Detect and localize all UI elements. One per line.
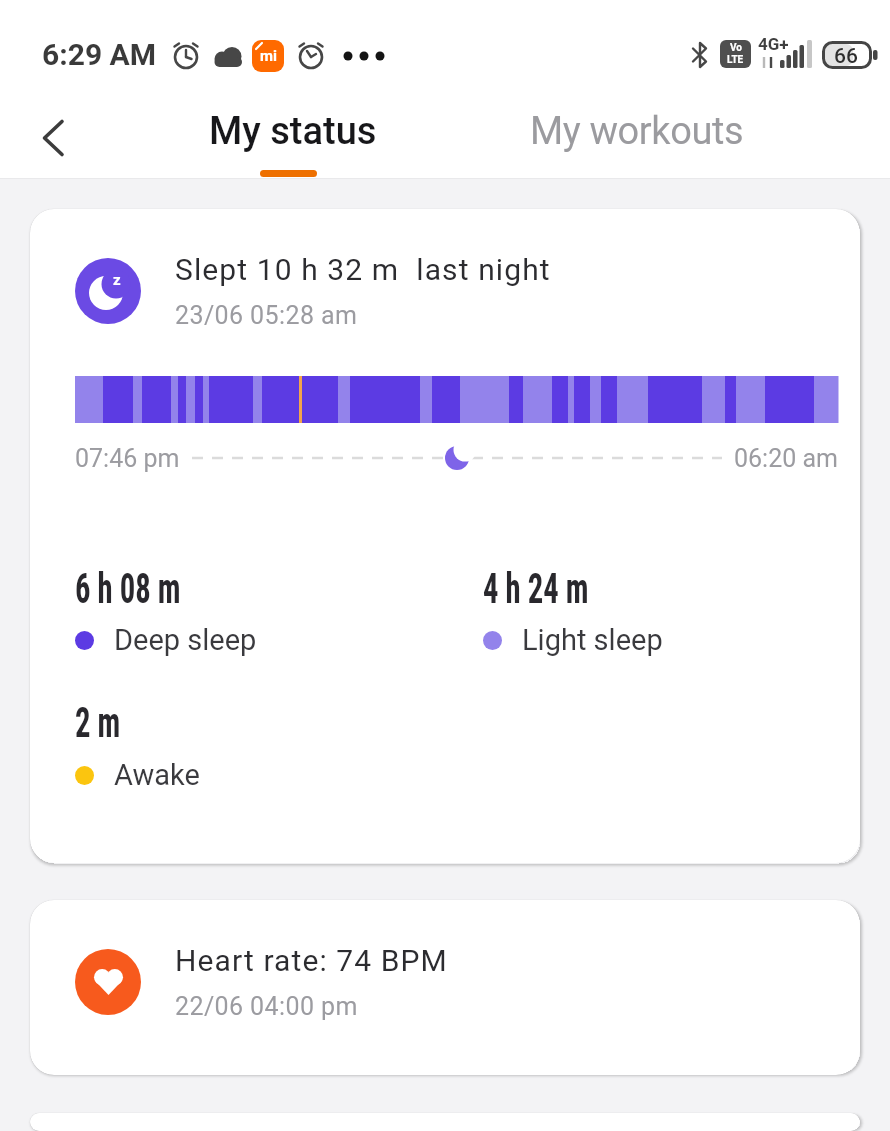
- staticText: Slept 10 h 32 m last night: [175, 252, 551, 287]
- staticText: mi: [260, 47, 277, 65]
- staticText: 07:46 pm: [75, 444, 180, 473]
- staticText: Light sleep: [522, 623, 663, 657]
- button[interactable]: Heart rate: 74 BPM: [30, 900, 860, 1075]
- staticText: 66: [834, 44, 858, 69]
- staticText: 06:20 am: [734, 444, 838, 473]
- button[interactable]: My status: [200, 90, 380, 178]
- staticText: 6:29 AM: [42, 37, 157, 72]
- button[interactable]: z: [30, 209, 860, 863]
- staticText: Vo: [730, 42, 742, 54]
- staticText: 4 h 24 m: [483, 564, 589, 613]
- staticText: Deep sleep: [114, 623, 257, 657]
- staticText: My status: [209, 109, 377, 154]
- staticText: My workouts: [530, 109, 744, 154]
- staticText: 23/06 05:28 am: [175, 301, 358, 330]
- button[interactable]: [30, 108, 78, 168]
- staticText: 2 m: [75, 698, 121, 747]
- staticText: 4G+: [758, 34, 789, 54]
- staticText: z: [113, 271, 121, 289]
- button[interactable]: My workouts: [520, 90, 750, 178]
- staticText: 6 h 08 m: [75, 564, 181, 613]
- staticText: 22/06 04:00 pm: [175, 992, 358, 1021]
- staticText: LTE: [727, 54, 744, 66]
- staticText: Awake: [114, 758, 200, 792]
- staticText: Heart rate: 74 BPM: [175, 943, 448, 978]
